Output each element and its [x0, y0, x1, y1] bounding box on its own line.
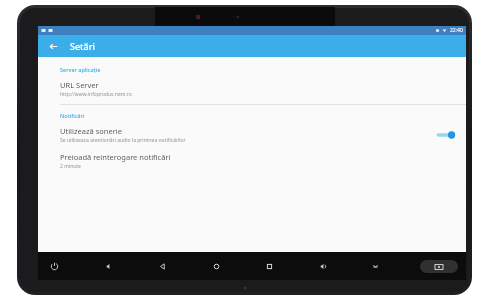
staticText: Setări [70, 40, 95, 52]
staticText: Utilizează sonerie [60, 126, 122, 136]
button[interactable]: Home [208, 258, 224, 274]
button[interactable]: Preioadă reinterogare notificări [38, 150, 466, 172]
staticText: URL Server [60, 80, 99, 90]
button[interactable]: Back [154, 258, 170, 274]
button[interactable]: Utilizează sonerie [38, 124, 466, 146]
button[interactable]: URL Server [38, 78, 466, 100]
staticText: Preioadă reinterogare notificări [60, 152, 171, 162]
button[interactable]: Recents [261, 258, 277, 274]
button[interactable]: Volume up [314, 258, 330, 274]
staticText: http://www.infoprodus.nem.ro [60, 91, 132, 98]
button[interactable]: Utilizează sonerie toggle [434, 128, 456, 142]
staticText: Se utilizeaza atentionări audio la primi… [60, 137, 186, 144]
button[interactable]: Volume down [100, 258, 116, 274]
staticText: 2 minute [60, 163, 81, 170]
button[interactable]: Power [46, 258, 62, 274]
staticText: Notificări [60, 112, 85, 119]
button[interactable]: Screenshot [420, 260, 458, 273]
button[interactable]: Back [44, 37, 62, 55]
staticText: 22:40 [450, 27, 463, 34]
button[interactable]: Collapse [367, 258, 383, 274]
staticText: Server aplicație [60, 66, 101, 73]
